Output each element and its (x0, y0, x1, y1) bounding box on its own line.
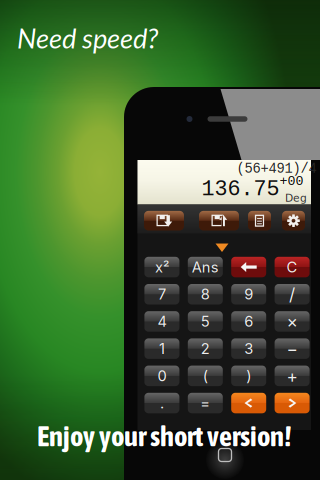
button[interactable]: 3 (231, 338, 266, 359)
staticText: 8 (201, 285, 210, 303)
button[interactable]: 0 (144, 366, 179, 386)
staticText: 9 (244, 285, 253, 303)
staticText: (56+491)/4 (236, 161, 316, 177)
staticText: 1 (159, 340, 165, 357)
staticText: ) (246, 367, 251, 385)
button[interactable]: 7 (144, 284, 179, 304)
staticText: 6 (244, 313, 253, 330)
staticText: Ans (192, 258, 219, 276)
staticText: +00 (279, 174, 303, 189)
staticText: 0 (157, 367, 166, 385)
button[interactable]: C (275, 257, 310, 277)
button[interactable]: / (275, 284, 310, 304)
button[interactable]: − (275, 338, 310, 359)
staticText: Enjoy your short version! (37, 420, 291, 452)
button[interactable]: ( (188, 366, 223, 386)
button[interactable]: Next (275, 393, 310, 413)
button[interactable]: + (275, 366, 310, 386)
button[interactable]: . (144, 393, 179, 413)
staticText: + (287, 365, 298, 386)
staticText: C (287, 258, 298, 276)
staticText: − (287, 338, 298, 359)
button[interactable]: ) (231, 366, 266, 386)
staticText: Deg (285, 192, 307, 204)
staticText: x² (155, 258, 169, 276)
staticText: × (287, 311, 298, 332)
staticText: Need speed? (17, 22, 158, 54)
button[interactable]: History (248, 211, 271, 230)
staticText: / (289, 284, 295, 305)
staticText: 2 (201, 340, 210, 357)
button[interactable]: 1 (144, 338, 179, 359)
staticText: . (160, 394, 164, 412)
button[interactable]: Load (199, 211, 239, 230)
staticText: 7 (158, 285, 166, 303)
button[interactable]: 9 (231, 284, 266, 304)
button[interactable]: 8 (188, 284, 223, 304)
button[interactable]: Backspace (231, 257, 266, 277)
button[interactable]: Settings (282, 211, 305, 230)
button[interactable]: 6 (231, 311, 266, 332)
staticText: 4 (157, 313, 166, 330)
staticText: 136.75 (201, 177, 279, 202)
button[interactable]: x² (144, 257, 179, 277)
staticText: 3 (244, 340, 253, 357)
staticText: = (200, 394, 210, 412)
button[interactable]: = (188, 393, 223, 413)
button[interactable]: 5 (188, 311, 223, 332)
button[interactable]: 2 (188, 338, 223, 359)
button[interactable]: × (275, 311, 310, 332)
button[interactable]: 4 (144, 311, 179, 332)
button[interactable]: Save (144, 211, 184, 230)
button[interactable]: Ans (188, 257, 223, 277)
staticText: 5 (201, 313, 210, 330)
button[interactable]: Previous (231, 393, 266, 413)
staticText: ( (203, 367, 208, 385)
